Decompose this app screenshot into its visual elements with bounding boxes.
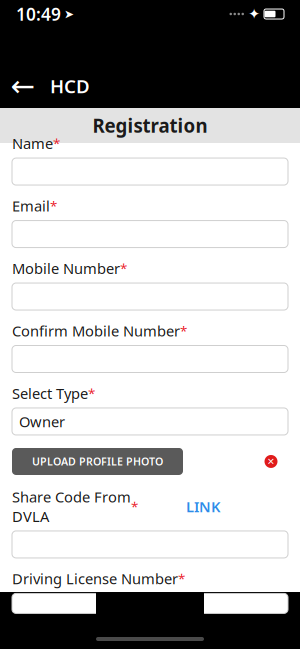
button[interactable]: UPLOAD PROFILE PHOTO: [12, 448, 183, 475]
staticText: Confirm Mobile Number: [12, 321, 180, 340]
button[interactable]: Owner: [12, 408, 288, 435]
staticText: Mobile Number: [12, 258, 120, 278]
staticText: Select Type: [12, 383, 88, 403]
staticText: *: [53, 134, 60, 152]
button[interactable]: Remove photo: [260, 450, 282, 472]
staticText: ←: [10, 69, 35, 103]
staticText: ✕: [267, 456, 275, 467]
staticText: ✦: [248, 6, 260, 22]
staticText: Registration: [92, 113, 207, 138]
staticText: Name: [12, 134, 53, 153]
button[interactable]: [12, 158, 288, 185]
staticText: *: [88, 384, 95, 402]
staticText: Email: [12, 196, 50, 216]
staticText: *: [180, 322, 187, 340]
staticText: LINK: [186, 497, 220, 516]
button[interactable]: LINK: [180, 495, 226, 518]
staticText: UPLOAD PROFILE PHOTO: [32, 454, 163, 469]
button[interactable]: [12, 531, 288, 558]
staticText: Driving License Number: [12, 569, 178, 588]
staticText: *: [120, 259, 127, 277]
staticText: *: [131, 498, 138, 515]
staticText: *: [178, 570, 185, 587]
staticText: 10:49: [16, 2, 61, 25]
staticText: Share Code From DVLA: [12, 487, 131, 526]
staticText: HCD: [50, 74, 90, 98]
button[interactable]: Back: [10, 71, 36, 101]
button[interactable]: [12, 220, 288, 247]
staticText: ➤: [64, 7, 74, 21]
staticText: Owner: [19, 412, 65, 431]
button[interactable]: [12, 593, 288, 613]
staticText: *: [50, 197, 57, 215]
button[interactable]: [12, 283, 288, 310]
